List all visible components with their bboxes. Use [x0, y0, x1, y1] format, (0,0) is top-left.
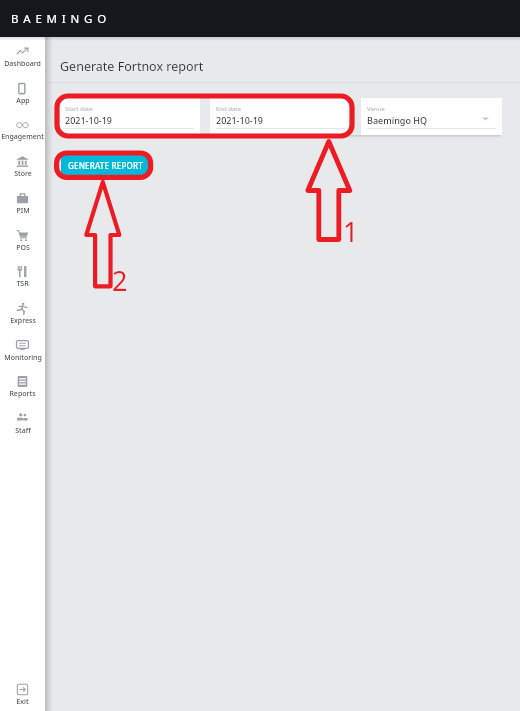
- staticText: Engagement: [1, 132, 44, 142]
- staticText: Express: [10, 316, 36, 326]
- staticText: Baemingo HQ: [367, 114, 428, 126]
- button[interactable]: Store: [0, 154, 45, 183]
- staticText: GENERATE REPORT: [68, 160, 143, 171]
- staticText: 2: [112, 262, 128, 299]
- staticText: Monitoring: [4, 353, 42, 363]
- button[interactable]: TSR: [0, 264, 45, 293]
- button[interactable]: PIM: [0, 191, 45, 220]
- staticText: PIM: [16, 206, 30, 216]
- button[interactable]: Reports: [0, 374, 45, 403]
- button[interactable]: GENERATE REPORT: [61, 155, 150, 176]
- staticText: Reports: [9, 389, 36, 399]
- staticText: Staff: [15, 426, 31, 436]
- staticText: 2021-10-19: [65, 114, 112, 126]
- button[interactable]: Engagement: [0, 117, 45, 146]
- other: Open venue dropdown: [482, 115, 489, 122]
- staticText: Venue: [367, 105, 385, 113]
- staticText: BAEMINGO: [11, 11, 112, 27]
- staticText: Exit: [16, 697, 29, 707]
- staticText: App: [16, 96, 30, 106]
- button[interactable]: Monitoring: [0, 338, 45, 367]
- button[interactable]: POS: [0, 228, 45, 257]
- staticText: Store: [14, 169, 32, 179]
- staticText: TSR: [16, 279, 29, 289]
- button[interactable]: Express: [0, 301, 45, 330]
- button[interactable]: Venue: [361, 98, 502, 135]
- button[interactable]: Exit: [0, 682, 45, 711]
- staticText: POS: [16, 243, 30, 253]
- staticText: 1: [343, 213, 359, 250]
- button[interactable]: Dashboard: [0, 44, 45, 73]
- staticText: End date: [216, 105, 241, 113]
- button[interactable]: End date: [210, 98, 351, 135]
- staticText: Generate Fortnox report: [60, 58, 204, 75]
- staticText: Start date: [65, 105, 93, 113]
- button[interactable]: Staff: [0, 411, 45, 440]
- button[interactable]: App: [0, 81, 45, 110]
- button[interactable]: Start date: [59, 98, 200, 135]
- staticText: 2021-10-19: [216, 114, 263, 126]
- staticText: Dashboard: [4, 59, 41, 69]
